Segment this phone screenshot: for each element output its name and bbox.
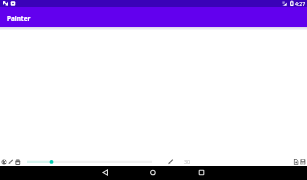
button[interactable]: Save drawing <box>299 153 307 166</box>
button[interactable]: Paint bucket <box>14 153 22 166</box>
button[interactable]: Brush size 30 <box>177 153 193 166</box>
staticText: 30 <box>184 158 191 165</box>
button[interactable]: Brush <box>164 153 177 166</box>
button[interactable]: Brush size slider <box>24 153 156 166</box>
button[interactable]: Home <box>143 166 162 180</box>
staticText: 4:27 <box>295 0 306 7</box>
button[interactable]: New drawing <box>292 153 299 166</box>
staticText: Painter <box>7 14 31 23</box>
button[interactable]: Pencil <box>7 153 14 166</box>
button[interactable]: Back <box>96 166 115 180</box>
button[interactable]: Colour palette <box>0 153 9 166</box>
button[interactable]: Recents <box>191 166 210 180</box>
